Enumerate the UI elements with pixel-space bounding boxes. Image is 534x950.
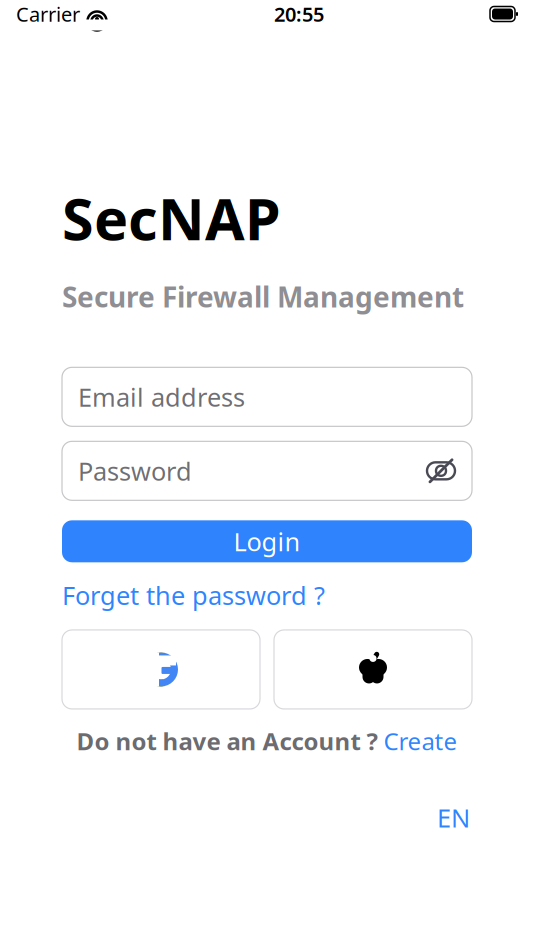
- staticText: Email address: [78, 380, 245, 414]
- staticText: Create: [383, 725, 457, 757]
- staticText: Secure Firewall Management: [62, 278, 464, 315]
- staticText: Password: [78, 454, 192, 488]
- button[interactable]: Sign in with Google: [62, 630, 260, 709]
- staticText: Login: [233, 524, 300, 558]
- button[interactable]: Create: [383, 725, 457, 757]
- staticText: 20:55: [274, 1, 324, 27]
- button[interactable]: Email address: [62, 367, 472, 426]
- button[interactable]: EN: [435, 799, 472, 836]
- staticText: Do not have an Account ?: [76, 725, 377, 757]
- staticText: Carrier: [16, 1, 80, 27]
- button[interactable]: Sign in with Apple: [274, 630, 472, 709]
- button[interactable]: Login: [62, 520, 472, 562]
- staticText: SecNAP: [62, 180, 281, 256]
- staticText: Forget the password ?: [62, 578, 325, 612]
- staticText: EN: [437, 801, 470, 834]
- button[interactable]: Forget the password ?: [62, 576, 325, 614]
- button[interactable]: Show password: [426, 456, 456, 486]
